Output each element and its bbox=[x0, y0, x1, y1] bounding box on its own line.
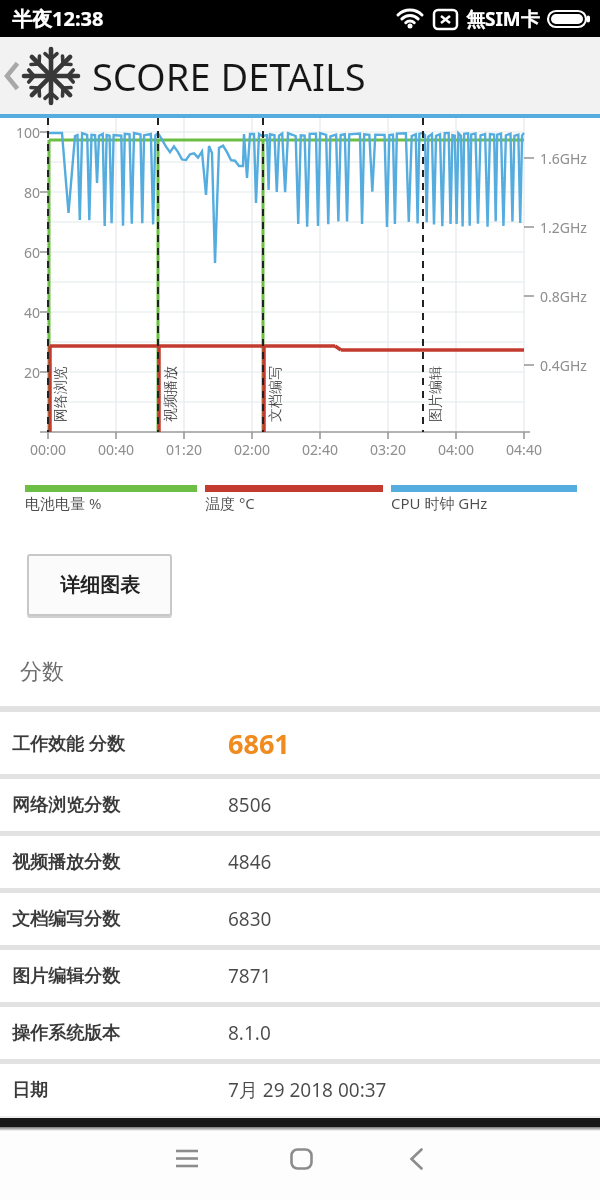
button[interactable] bbox=[159, 1131, 215, 1187]
staticText: 無SIM卡 bbox=[466, 6, 540, 32]
staticText: 00:00 bbox=[18, 440, 78, 459]
staticText: 网络浏览分数 bbox=[12, 794, 120, 817]
staticText: 6830 bbox=[228, 906, 272, 932]
staticText: 温度 °C bbox=[205, 493, 255, 513]
staticText: 02:00 bbox=[222, 440, 282, 459]
staticText: 操作系统版本 bbox=[12, 1022, 120, 1045]
staticText: 100 bbox=[0, 123, 40, 142]
staticText: 分数 bbox=[20, 658, 64, 686]
button[interactable]: 操作系统版本 bbox=[0, 1007, 600, 1059]
button[interactable]: SCORE DETAILS bbox=[4, 46, 366, 106]
staticText: 1.6GHz bbox=[540, 149, 587, 168]
staticText: 80 bbox=[0, 183, 40, 202]
staticText: 网络浏览 bbox=[52, 366, 70, 422]
staticText: SCORE DETAILS bbox=[92, 50, 366, 102]
staticText: 工作效能 分数 bbox=[12, 731, 125, 756]
button[interactable]: 日期 bbox=[0, 1064, 600, 1116]
staticText: 02:40 bbox=[290, 440, 350, 459]
staticText: 01:20 bbox=[154, 440, 214, 459]
staticText: 图片编辑 bbox=[427, 366, 445, 422]
staticText: 文档编写 bbox=[267, 366, 285, 422]
staticText: 视频播放分数 bbox=[12, 851, 120, 874]
staticText: 8506 bbox=[228, 792, 272, 818]
staticText: 半夜12:38 bbox=[12, 5, 104, 32]
staticText: 7871 bbox=[228, 963, 272, 989]
button[interactable]: 网络浏览分数 bbox=[0, 779, 600, 831]
staticText: 电池电量 % bbox=[25, 493, 102, 513]
button[interactable]: 图片编辑分数 bbox=[0, 950, 600, 1002]
button[interactable]: 文档编写分数 bbox=[0, 893, 600, 945]
button[interactable]: 详细图表 bbox=[27, 554, 172, 616]
staticText: 1.2GHz bbox=[540, 218, 587, 237]
staticText: 0.4GHz bbox=[540, 356, 587, 375]
staticText: 60 bbox=[0, 243, 40, 262]
button[interactable]: 工作效能 分数 bbox=[0, 712, 600, 774]
staticText: 20 bbox=[0, 363, 40, 382]
button[interactable] bbox=[273, 1131, 329, 1187]
staticText: 8.1.0 bbox=[228, 1020, 271, 1046]
staticText: 04:40 bbox=[494, 440, 554, 459]
button[interactable]: 视频播放分数 bbox=[0, 836, 600, 888]
staticText: 03:20 bbox=[358, 440, 418, 459]
staticText: 详细图表 bbox=[60, 573, 140, 598]
staticText: CPU 时钟 GHz bbox=[391, 493, 488, 513]
staticText: 7月 29 2018 00:37 bbox=[228, 1077, 387, 1103]
staticText: 图片编辑分数 bbox=[12, 965, 120, 988]
staticText: 04:00 bbox=[426, 440, 486, 459]
staticText: 文档编写分数 bbox=[12, 908, 120, 931]
staticText: 6861 bbox=[228, 725, 290, 762]
staticText: 4846 bbox=[228, 849, 272, 875]
button[interactable] bbox=[388, 1131, 444, 1187]
staticText: 0.8GHz bbox=[540, 287, 587, 306]
staticText: 00:40 bbox=[86, 440, 146, 459]
staticText: 视频播放 bbox=[162, 366, 180, 422]
staticText: 40 bbox=[0, 303, 40, 322]
staticText: 日期 bbox=[12, 1079, 48, 1102]
